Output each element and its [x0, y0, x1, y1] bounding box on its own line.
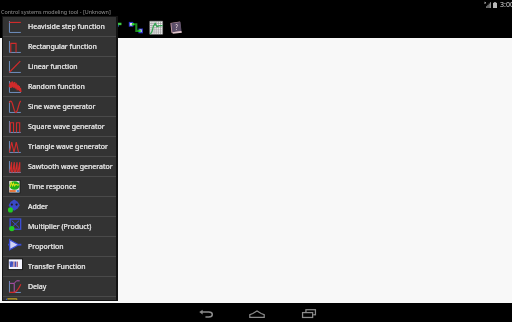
staticText: Time responce	[28, 182, 77, 192]
staticText: Heaviside step function	[28, 22, 105, 32]
staticText: Delay	[28, 282, 47, 292]
staticText: Rectangular function	[28, 42, 97, 52]
button[interactable]: Square wave generator	[3, 117, 116, 136]
button[interactable]: Rectangular function	[3, 37, 116, 56]
staticText: Sine wave generator	[28, 102, 96, 112]
button[interactable]: Delay	[3, 277, 116, 296]
button[interactable]	[3, 297, 116, 300]
staticText: Linear function	[28, 62, 78, 72]
staticText: Proportion	[28, 242, 64, 252]
staticText: Adder	[28, 202, 48, 212]
button[interactable]: Help	[170, 18, 184, 32]
button[interactable]: Heaviside step function	[3, 17, 116, 36]
staticText: Multiplier (Product)	[28, 222, 92, 232]
button[interactable]: Home	[242, 303, 272, 322]
staticText: Control systems modeling tool - [Unknown…	[1, 8, 111, 15]
button[interactable]: Plot	[149, 18, 163, 32]
staticText: Sawtooth wave generator	[28, 162, 113, 172]
button[interactable]: Proportion	[3, 237, 116, 256]
staticText: Triangle wave generator	[28, 142, 108, 152]
button[interactable]: Random function	[3, 77, 116, 96]
staticText: Transfer Function	[28, 262, 86, 272]
button[interactable]: Sine wave generator	[3, 97, 116, 116]
button[interactable]: Linear function	[3, 57, 116, 76]
button[interactable]: Adder	[3, 197, 116, 216]
button[interactable]: Time responce	[3, 177, 116, 196]
button[interactable]: Recents	[294, 303, 324, 322]
button[interactable]: Multiplier (Product)	[3, 217, 116, 236]
staticText: Random function	[28, 82, 85, 92]
staticText: Square wave generator	[28, 122, 105, 132]
staticText: 3:00	[500, 0, 512, 9]
button[interactable]: Triangle wave generator	[3, 137, 116, 156]
button[interactable]: Transfer Function	[3, 257, 116, 276]
button[interactable]: Sawtooth wave generator	[3, 157, 116, 176]
button[interactable]: Back	[191, 303, 221, 322]
button[interactable]: Connect	[127, 18, 142, 33]
